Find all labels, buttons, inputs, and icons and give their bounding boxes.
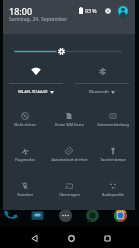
staticText: Übertragen: [59, 192, 80, 197]
button[interactable]: Audioprofile: [91, 174, 135, 209]
staticText: 93 %: [85, 7, 97, 14]
staticText: Flugmodus: [15, 157, 35, 162]
button[interactable]: Bluetooth: [69, 56, 135, 104]
staticText: Nicht stören: [14, 122, 36, 127]
button[interactable]: Flugmodus: [3, 139, 47, 174]
button[interactable]: WLAN-9DAA30: [3, 56, 69, 104]
button[interactable]: Automatisch drehen: [47, 139, 91, 174]
staticText: WLAN-9DAA30: [18, 88, 48, 94]
staticText: Taschenlampe: [100, 157, 126, 162]
button[interactable]: Nicht stören: [3, 104, 47, 139]
button[interactable]: All apps: [57, 207, 74, 224]
button[interactable]: Messages: [29, 207, 46, 224]
button[interactable]: User account: [117, 5, 128, 16]
staticText: Bluetooth: [89, 88, 109, 94]
staticText: Datenverbindung: [97, 122, 129, 127]
button[interactable]: Taschenlampe: [91, 139, 135, 174]
button[interactable]: WhatsApp: [84, 207, 101, 224]
button[interactable]: Recents: [98, 229, 116, 247]
staticText: Audioprofile: [102, 192, 124, 197]
button[interactable]: Home: [62, 229, 80, 247]
button[interactable]: Keine SIM-Karte: [47, 104, 91, 139]
button[interactable]: Brightness: [55, 45, 68, 58]
button[interactable]: Chrome: [112, 207, 129, 224]
staticText: Standort: [17, 192, 33, 197]
button[interactable]: Phone: [1, 207, 18, 224]
button[interactable]: Datenverbindung: [91, 104, 135, 139]
staticText: 18:00: [9, 5, 33, 17]
button[interactable]: Settings: [102, 5, 113, 16]
staticText: Automatisch drehen: [51, 157, 88, 162]
button[interactable]: Standort: [3, 174, 47, 209]
button[interactable]: Übertragen: [47, 174, 91, 209]
staticText: Samstag, 24. September: [9, 16, 68, 23]
button[interactable]: Back: [25, 229, 43, 247]
staticText: Keine SIM-Karte: [55, 122, 84, 127]
